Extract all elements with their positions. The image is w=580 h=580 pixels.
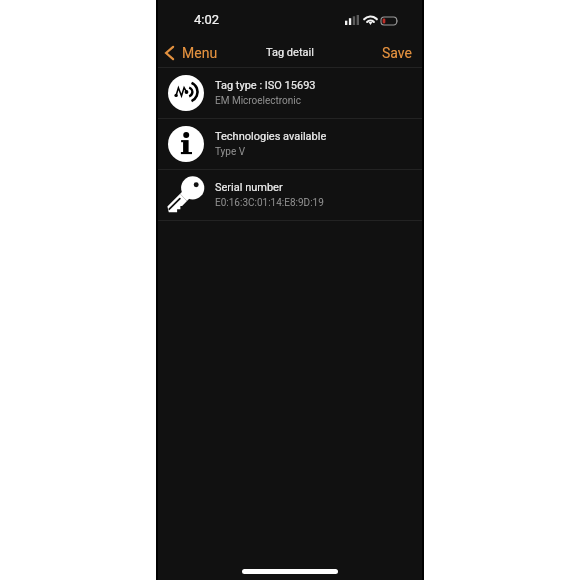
other: Serial number key — [166, 175, 206, 215]
staticText: Serial number — [215, 181, 283, 194]
other: NFC tag type — [168, 75, 204, 111]
staticText: Menu — [182, 45, 218, 61]
staticText: Tag detail — [266, 46, 314, 59]
button[interactable]: Serial number key — [158, 170, 422, 221]
other: Technologies information — [168, 126, 204, 162]
staticText: Tag type : ISO 15693 — [215, 79, 316, 92]
staticText: E0:16:3C:01:14:E8:9D:19 — [215, 197, 324, 209]
button[interactable]: NFC tag type — [158, 68, 422, 119]
button[interactable]: Technologies information — [158, 119, 422, 170]
button[interactable]: Save — [372, 40, 422, 66]
staticText: EM Microelectronic — [215, 95, 302, 107]
staticText: 4:02 — [194, 12, 220, 27]
staticText: Technologies available — [215, 130, 327, 143]
button[interactable]: Menu — [158, 40, 226, 66]
staticText: Type V — [215, 146, 246, 158]
